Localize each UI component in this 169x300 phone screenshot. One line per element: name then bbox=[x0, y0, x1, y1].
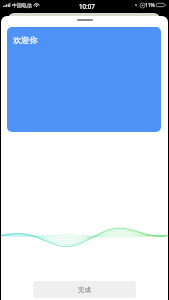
button[interactable]: 完成 bbox=[33, 281, 136, 298]
staticText: 10:07 bbox=[79, 2, 95, 10]
staticText: 11% bbox=[145, 2, 155, 9]
staticText: 中国电信 bbox=[12, 2, 32, 8]
staticText: 完成 bbox=[78, 286, 91, 294]
staticText: 欢迎你 bbox=[13, 35, 38, 45]
button[interactable]: 欢迎你 bbox=[7, 27, 161, 132]
